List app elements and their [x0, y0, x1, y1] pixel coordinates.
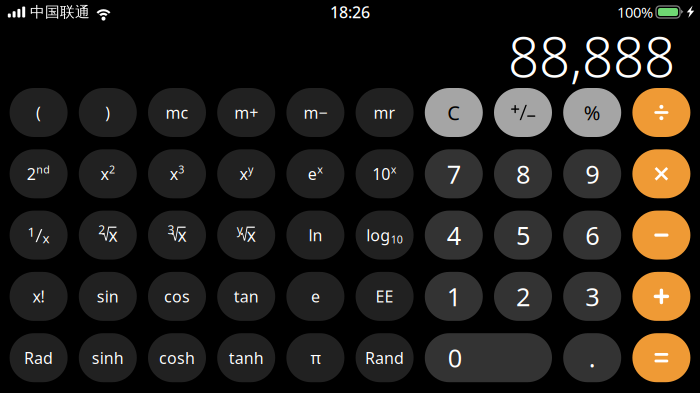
button[interactable]: cos [148, 272, 206, 321]
button[interactable]: ) [79, 88, 137, 137]
staticText: 10 [391, 232, 403, 246]
button[interactable]: Equals [632, 333, 690, 382]
staticText: cos [164, 286, 190, 307]
button[interactable]: m− [286, 88, 344, 137]
staticText: 8 [516, 157, 530, 191]
staticText: 2 [516, 280, 530, 313]
staticText: x [247, 223, 256, 246]
button[interactable]: Add [632, 272, 690, 321]
staticText: x! [33, 286, 45, 307]
staticText: log [366, 224, 390, 246]
staticText: sinh [92, 347, 124, 368]
button[interactable]: ( [10, 88, 68, 137]
button[interactable]: Rad [10, 333, 68, 382]
button[interactable]: ln [286, 211, 344, 260]
button[interactable]: log [356, 211, 414, 260]
button[interactable]: 1 [425, 272, 483, 321]
button[interactable]: 3 [563, 272, 621, 321]
staticText: 6 [585, 218, 599, 252]
staticText: ) [105, 102, 110, 123]
staticText: 88,888 [508, 20, 675, 92]
button[interactable]: 2 [494, 272, 552, 321]
button[interactable]: y [217, 211, 275, 260]
button[interactable]: sin [79, 272, 137, 321]
button[interactable]: x! [10, 272, 68, 321]
button[interactable]: Subtract [632, 211, 690, 260]
staticText: y [237, 222, 243, 237]
staticText: 100% [617, 2, 653, 22]
staticText: % [584, 99, 601, 126]
staticText: 2 [98, 222, 105, 237]
button[interactable]: x [148, 149, 206, 198]
staticText: 1 [28, 223, 36, 240]
staticText: EE [376, 286, 394, 307]
staticText: x [170, 163, 178, 184]
button[interactable]: 6 [563, 211, 621, 260]
button[interactable]: e [286, 149, 344, 198]
button[interactable]: EE [356, 272, 414, 321]
button[interactable]: 10 [356, 149, 414, 198]
button[interactable]: Divide [632, 88, 690, 137]
button[interactable]: sinh [79, 333, 137, 382]
staticText: Rand [365, 347, 404, 368]
staticText: 5 [516, 218, 530, 252]
button[interactable]: 2 [79, 211, 137, 260]
button[interactable]: 7 [425, 149, 483, 198]
staticText: x [101, 163, 109, 184]
staticText: C [447, 99, 460, 126]
button[interactable]: . [563, 333, 621, 382]
button[interactable]: tanh [217, 333, 275, 382]
staticText: y [248, 162, 253, 176]
button[interactable]: mr [356, 88, 414, 137]
staticText: 3 [178, 162, 184, 176]
staticText: Rad [24, 347, 53, 368]
button[interactable]: 5 [494, 211, 552, 260]
staticText: x [391, 162, 397, 176]
button[interactable]: mc [148, 88, 206, 137]
staticText: 18:26 [330, 1, 370, 23]
button[interactable]: x [217, 149, 275, 198]
staticText: 10 [372, 163, 390, 184]
staticText: . [589, 341, 596, 374]
button[interactable]: 4 [425, 211, 483, 260]
staticText: 9 [585, 157, 599, 191]
staticText: cosh [159, 347, 195, 368]
staticText: x [239, 163, 247, 184]
staticText: sin [97, 286, 119, 307]
button[interactable]: Rand [356, 333, 414, 382]
staticText: mr [374, 102, 396, 123]
staticText: tanh [229, 347, 264, 368]
button[interactable]: cosh [148, 333, 206, 382]
button[interactable]: m+ [217, 88, 275, 137]
button[interactable]: x [79, 149, 137, 198]
button[interactable]: % [563, 88, 621, 137]
button[interactable]: C [425, 88, 483, 137]
button[interactable]: 3 [148, 211, 206, 260]
staticText: ( [36, 102, 41, 123]
button[interactable]: 2 [10, 149, 68, 198]
staticText: x [108, 223, 117, 246]
button[interactable]: tan [217, 272, 275, 321]
staticText: mc [165, 102, 188, 123]
button[interactable]: 1 [10, 211, 68, 260]
staticText: 2 [109, 162, 115, 176]
staticText: 3 [167, 222, 174, 237]
button[interactable]: Multiply [632, 149, 690, 198]
staticText: 3 [585, 280, 599, 313]
button[interactable]: 0 [425, 333, 552, 382]
staticText: e [308, 163, 317, 184]
button[interactable]: Plus Minus [494, 88, 552, 137]
staticText: m+ [234, 102, 258, 123]
staticText: tan [234, 286, 259, 307]
staticText: 4 [447, 218, 461, 252]
staticText: x [317, 162, 323, 176]
staticText: 2 [27, 163, 36, 184]
button[interactable]: π [286, 333, 344, 382]
button[interactable]: 8 [494, 149, 552, 198]
button[interactable]: e [286, 272, 344, 321]
staticText: nd [36, 162, 50, 176]
button[interactable]: 9 [563, 149, 621, 198]
staticText: m− [303, 102, 327, 123]
staticText: 0 [448, 341, 462, 374]
staticText: π [310, 347, 320, 368]
